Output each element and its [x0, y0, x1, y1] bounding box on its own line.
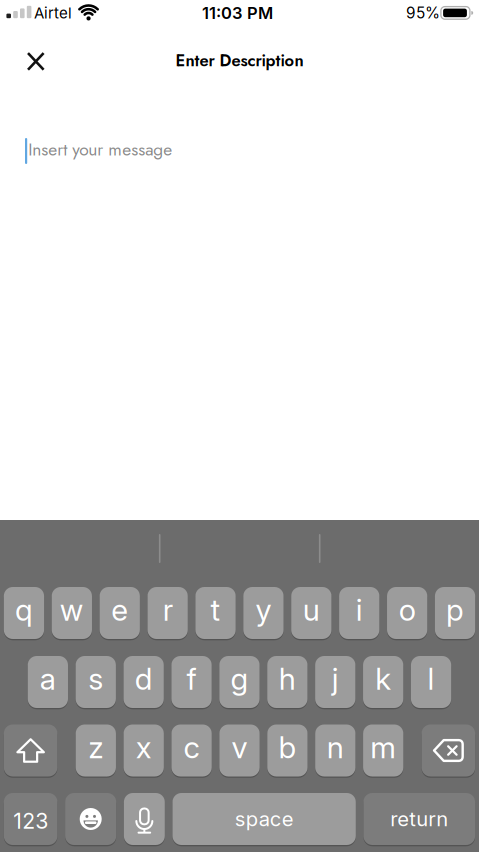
staticText: w: [60, 592, 84, 628]
staticText: space: [235, 807, 294, 831]
staticText: s: [88, 661, 103, 697]
button[interactable]: b: [267, 724, 307, 776]
button[interactable]: m: [363, 724, 403, 776]
button[interactable]: r: [147, 587, 188, 639]
button[interactable]: p: [435, 587, 475, 639]
staticText: 11:03 PM: [202, 3, 273, 23]
staticText: 95%: [406, 4, 440, 22]
button[interactable]: y: [243, 587, 283, 639]
staticText: h: [279, 661, 296, 697]
button[interactable]: l: [411, 656, 451, 708]
staticText: x: [136, 729, 152, 765]
button[interactable]: Dictate: [124, 793, 165, 845]
button[interactable]: space: [172, 793, 356, 845]
staticText: v: [231, 729, 247, 765]
button[interactable]: e: [100, 587, 140, 639]
button[interactable]: z: [76, 724, 116, 776]
button[interactable]: o: [387, 587, 427, 639]
button[interactable]: c: [171, 724, 212, 776]
staticText: n: [327, 729, 344, 765]
button[interactable]: w: [52, 587, 92, 639]
button[interactable]: d: [123, 656, 164, 708]
staticText: p: [446, 592, 464, 628]
button[interactable]: x: [124, 724, 164, 776]
staticText: d: [135, 661, 153, 697]
button[interactable]: t: [195, 587, 236, 639]
staticText: u: [303, 592, 320, 628]
staticText: t: [211, 592, 221, 628]
staticText: g: [230, 661, 248, 697]
staticText: e: [111, 592, 128, 628]
button[interactable]: Shift: [4, 724, 57, 776]
button[interactable]: Numbers: [4, 793, 57, 845]
staticText: Airtel: [34, 4, 72, 22]
staticText: o: [399, 592, 416, 628]
staticText: return: [390, 807, 448, 831]
staticText: b: [278, 729, 296, 765]
button[interactable]: g: [219, 656, 259, 708]
button[interactable]: h: [267, 656, 307, 708]
button[interactable]: f: [171, 656, 212, 708]
staticText: a: [40, 661, 56, 697]
staticText: 123: [13, 808, 48, 834]
staticText: l: [428, 661, 435, 697]
button[interactable]: a: [28, 656, 68, 708]
staticText: j: [332, 661, 339, 697]
staticText: m: [370, 729, 396, 765]
staticText: z: [88, 729, 103, 765]
button[interactable]: Message: [25, 138, 465, 164]
staticText: c: [184, 729, 200, 765]
staticText: k: [375, 661, 391, 697]
button[interactable]: i: [339, 587, 379, 639]
button[interactable]: v: [219, 724, 260, 776]
staticText: y: [255, 592, 271, 628]
button[interactable]: u: [291, 587, 331, 639]
button[interactable]: n: [315, 724, 355, 776]
staticText: i: [356, 592, 363, 628]
button[interactable]: q: [4, 587, 44, 639]
staticText: Insert your message: [28, 137, 172, 162]
button[interactable]: Delete: [422, 724, 475, 776]
button[interactable]: return: [363, 793, 475, 845]
staticText: r: [163, 592, 173, 628]
button[interactable]: j: [315, 656, 355, 708]
button[interactable]: Emoji: [65, 793, 116, 845]
button[interactable]: Close: [14, 39, 58, 83]
staticText: Enter Description: [175, 49, 303, 72]
staticText: q: [15, 592, 33, 628]
button[interactable]: k: [363, 656, 403, 708]
staticText: f: [187, 661, 197, 697]
button[interactable]: s: [76, 656, 116, 708]
